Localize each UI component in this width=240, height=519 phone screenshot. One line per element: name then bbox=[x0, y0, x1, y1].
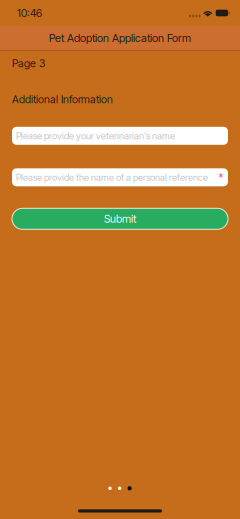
staticText: Page 3 bbox=[12, 57, 45, 70]
staticText: Submit bbox=[104, 212, 136, 225]
staticText: Additional Information bbox=[12, 93, 113, 106]
staticText: Please provide the name of a personal re… bbox=[16, 172, 208, 183]
staticText: * bbox=[218, 171, 223, 184]
staticText: 10:46 bbox=[17, 6, 42, 19]
staticText: Pet Adoption Application Form bbox=[49, 31, 191, 45]
button[interactable]: Submit bbox=[12, 208, 228, 229]
staticText: Please provide your veterinarian's name bbox=[16, 130, 175, 141]
